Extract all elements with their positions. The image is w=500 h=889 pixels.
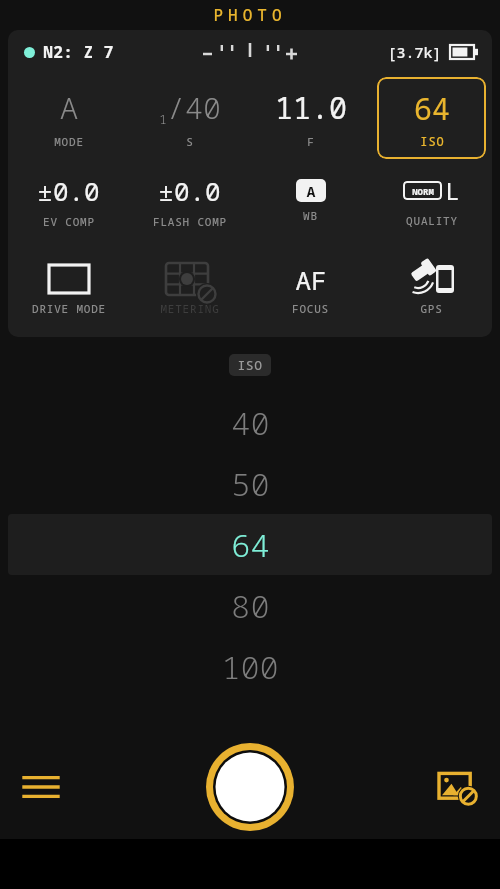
button[interactable]: 11.0: [250, 74, 371, 162]
staticText: [3.7k]: [387, 42, 442, 62]
button[interactable]: 40: [0, 392, 500, 453]
staticText: F: [307, 134, 315, 149]
staticText: N2: Z 7: [43, 41, 114, 63]
button[interactable]: 1: [129, 74, 250, 162]
staticText: AF: [295, 262, 327, 297]
button[interactable]: Shutter: [204, 741, 296, 833]
button[interactable]: GPS: [371, 240, 492, 337]
button[interactable]: NORM: [371, 162, 492, 240]
staticText: 100: [221, 645, 279, 689]
staticText: 50: [231, 462, 270, 506]
staticText: ISO: [237, 356, 263, 374]
staticText: S: [186, 134, 194, 149]
staticText: 40: [231, 401, 270, 445]
button[interactable]: 80: [0, 575, 500, 636]
button[interactable]: METERING: [129, 240, 250, 337]
staticText: ±0.0: [37, 173, 100, 208]
staticText: A: [306, 181, 316, 201]
staticText: MODE: [54, 134, 84, 149]
staticText: FOCUS: [292, 301, 329, 316]
staticText: ISO: [420, 133, 445, 149]
staticText: 80: [231, 584, 270, 628]
staticText: NORM: [412, 185, 434, 197]
button[interactable]: AF: [250, 240, 371, 337]
staticText: 64: [414, 88, 450, 129]
button[interactable]: Gallery unavailable: [432, 760, 486, 814]
button[interactable]: A: [8, 74, 129, 162]
staticText: 11.0: [275, 87, 347, 128]
staticText: A: [60, 87, 78, 128]
staticText: L: [445, 174, 460, 207]
button[interactable]: A: [250, 162, 371, 240]
button[interactable]: ±0.0: [129, 162, 250, 240]
button[interactable]: 64: [377, 77, 486, 159]
button[interactable]: 50: [0, 453, 500, 514]
button[interactable]: 100: [0, 636, 500, 697]
staticText: ±0.0: [158, 173, 221, 208]
staticText: /40: [167, 87, 221, 128]
staticText: QUALITY: [406, 213, 458, 228]
staticText: 1: [159, 110, 167, 128]
staticText: DRIVE MODE: [32, 301, 106, 316]
staticText: METERING: [160, 301, 220, 316]
staticText: 64: [231, 523, 270, 567]
button[interactable]: ±0.0: [8, 162, 129, 240]
button[interactable]: 64: [8, 514, 492, 575]
staticText: GPS: [420, 301, 443, 316]
staticText: EV COMP: [43, 214, 95, 229]
staticText: FLASH COMP: [153, 214, 227, 229]
button[interactable]: Menu: [14, 760, 68, 814]
staticText: PHOTO: [213, 4, 287, 26]
staticText: WB: [303, 208, 318, 223]
button[interactable]: DRIVE MODE: [8, 240, 129, 337]
